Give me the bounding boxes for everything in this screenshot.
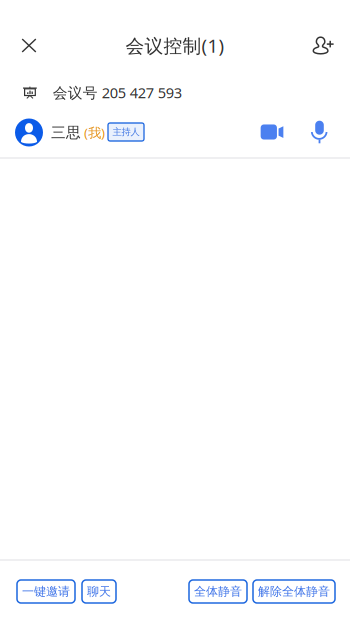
staticText: 主持人 bbox=[112, 126, 139, 138]
button[interactable]: 聊天 bbox=[82, 580, 116, 603]
staticText: 聊天 bbox=[87, 584, 111, 599]
button[interactable]: 解除全体静音 bbox=[253, 580, 335, 603]
staticText: 全体静音 bbox=[194, 584, 242, 599]
button[interactable]: 摄像头 bbox=[244, 115, 300, 149]
staticText: 三思 bbox=[51, 123, 81, 141]
staticText: 会议号 205 427 593 bbox=[53, 83, 182, 102]
staticText: 解除全体静音 bbox=[258, 584, 330, 599]
button[interactable]: 一键邀请 bbox=[17, 580, 75, 603]
button[interactable]: 邀请参会人 bbox=[301, 23, 345, 67]
staticText: (我) bbox=[84, 124, 105, 141]
button[interactable]: 麦克风 bbox=[300, 115, 339, 149]
staticText: 会议控制(1) bbox=[125, 33, 224, 58]
button[interactable]: 关闭 bbox=[7, 23, 51, 67]
button[interactable]: 全体静音 bbox=[189, 580, 247, 603]
staticText: 一键邀请 bbox=[22, 584, 70, 599]
